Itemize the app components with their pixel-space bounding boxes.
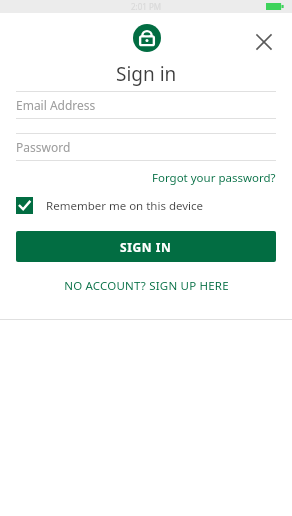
staticText: Forgot your password? bbox=[152, 170, 276, 186]
button[interactable]: Close bbox=[249, 27, 279, 57]
button[interactable]: Forgot your password? bbox=[152, 167, 276, 189]
button[interactable]: Remember me on this device bbox=[16, 195, 204, 216]
staticText: Sign in bbox=[116, 61, 177, 87]
staticText: NO ACCOUNT? SIGN UP HERE bbox=[64, 278, 229, 294]
button[interactable]: Password bbox=[16, 133, 276, 161]
staticText: Email Address bbox=[16, 97, 96, 113]
staticText: Password bbox=[16, 139, 71, 155]
button[interactable]: Email Address bbox=[16, 91, 276, 119]
button[interactable]: NO ACCOUNT? SIGN UP HERE bbox=[16, 275, 276, 297]
staticText: SIGN IN bbox=[120, 239, 172, 255]
button[interactable]: SIGN IN bbox=[16, 231, 276, 262]
staticText: 2:01 PM bbox=[131, 1, 162, 12]
staticText: Remember me on this device bbox=[46, 198, 204, 214]
